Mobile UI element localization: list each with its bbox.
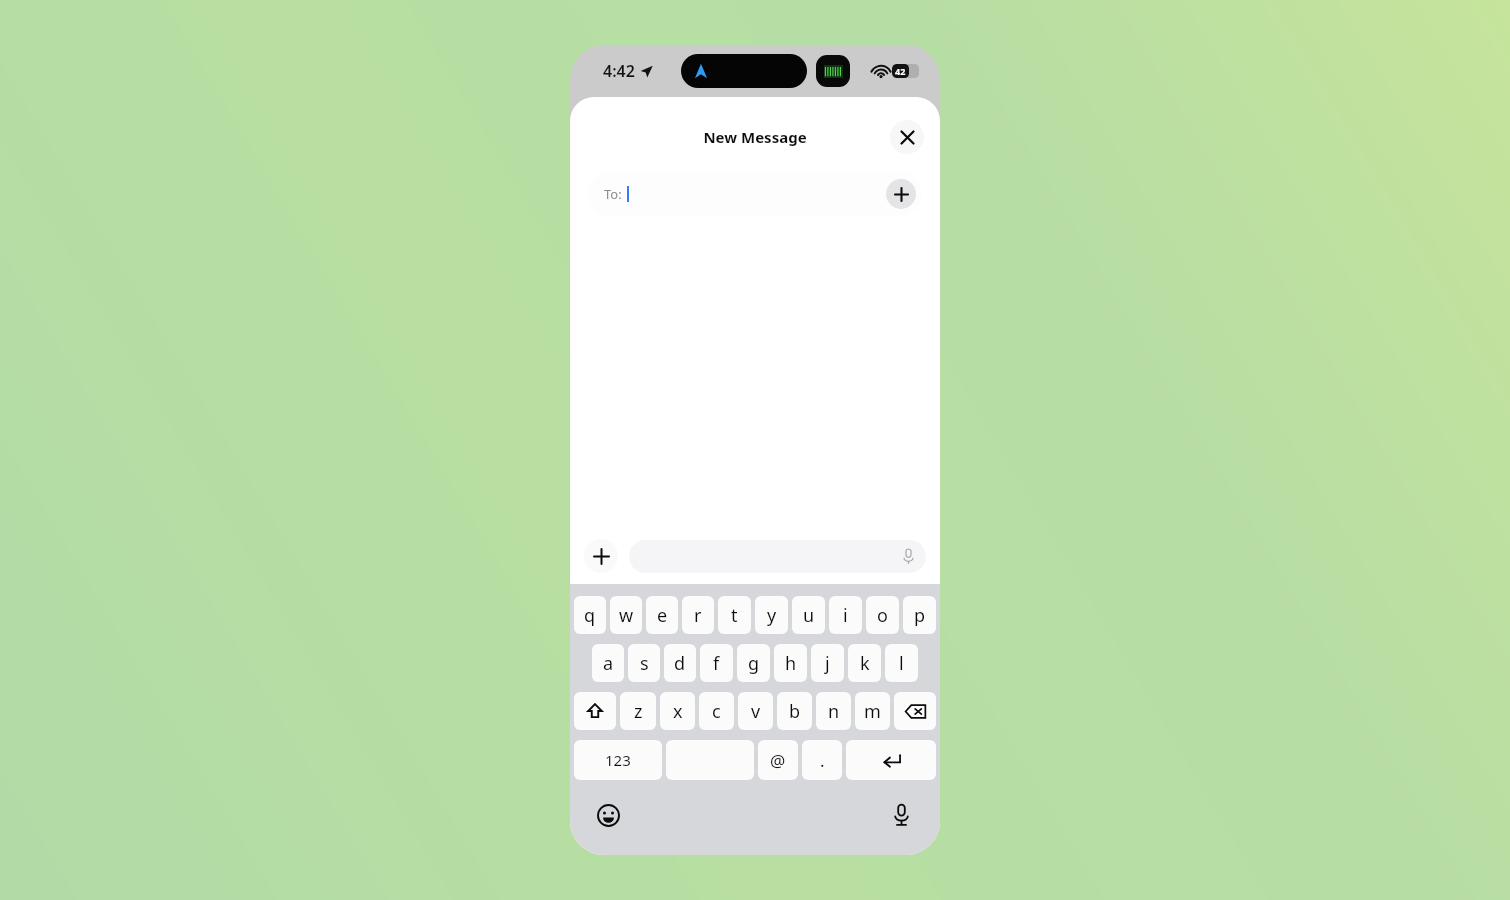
staticText: c: [712, 699, 721, 724]
button[interactable]: [629, 540, 926, 573]
button[interactable]: Return: [846, 740, 936, 780]
button[interactable]: k: [848, 644, 881, 682]
button[interactable]: e: [646, 596, 678, 634]
button[interactable]: u: [792, 596, 825, 634]
button[interactable]: n: [816, 692, 851, 730]
button[interactable]: q: [574, 596, 606, 634]
staticText: l: [899, 651, 904, 676]
button[interactable]: p: [903, 596, 936, 634]
button[interactable]: Add contact: [886, 179, 916, 209]
button[interactable]: Dictate: [888, 802, 914, 828]
button[interactable]: a: [592, 644, 624, 682]
button[interactable]: o: [866, 596, 899, 634]
button[interactable]: b: [777, 692, 812, 730]
staticText: .: [820, 749, 825, 772]
button[interactable]: l: [885, 644, 918, 682]
button[interactable]: y: [755, 596, 788, 634]
button[interactable]: Shift: [574, 692, 616, 730]
button[interactable]: s: [628, 644, 660, 682]
button[interactable]: z: [620, 692, 656, 730]
staticText: f: [713, 651, 720, 676]
staticText: e: [657, 603, 668, 628]
button[interactable]: j: [811, 644, 844, 682]
staticText: 42: [895, 65, 906, 77]
staticText: x: [673, 699, 683, 724]
staticText: g: [748, 651, 760, 676]
button[interactable]: d: [664, 644, 696, 682]
staticText: t: [731, 603, 738, 628]
button[interactable]: i: [829, 596, 862, 634]
staticText: 123: [605, 750, 631, 770]
staticText: @: [770, 749, 786, 772]
staticText: b: [789, 699, 801, 724]
staticText: 4:42: [603, 60, 635, 82]
button[interactable]: h: [774, 644, 807, 682]
staticText: w: [619, 603, 634, 628]
staticText: y: [767, 603, 777, 628]
staticText: q: [584, 603, 596, 628]
staticText: z: [634, 699, 643, 724]
staticText: n: [828, 699, 840, 724]
staticText: k: [860, 651, 870, 676]
button[interactable]: To:: [588, 172, 922, 216]
staticText: p: [914, 603, 926, 628]
button[interactable]: g: [737, 644, 770, 682]
button[interactable]: Emoji: [595, 802, 621, 828]
button[interactable]: Close: [890, 120, 924, 154]
staticText: New Message: [703, 127, 807, 147]
button[interactable]: t: [718, 596, 751, 634]
staticText: j: [825, 651, 830, 676]
button[interactable]: x: [660, 692, 695, 730]
button[interactable]: @: [758, 740, 798, 780]
staticText: m: [864, 699, 881, 724]
staticText: i: [843, 603, 848, 628]
button[interactable]: Space: [666, 740, 754, 780]
button[interactable]: c: [699, 692, 734, 730]
button[interactable]: .: [802, 740, 842, 780]
button[interactable]: r: [682, 596, 714, 634]
staticText: r: [694, 603, 702, 628]
button[interactable]: f: [700, 644, 733, 682]
button[interactable]: 123: [574, 740, 662, 780]
staticText: d: [674, 651, 686, 676]
button[interactable]: Attach: [584, 539, 618, 573]
staticText: u: [803, 603, 815, 628]
button[interactable]: m: [855, 692, 890, 730]
staticText: h: [785, 651, 797, 676]
staticText: o: [877, 603, 888, 628]
button[interactable]: v: [738, 692, 773, 730]
button[interactable]: Backspace: [894, 692, 936, 730]
staticText: v: [751, 699, 761, 724]
button[interactable]: w: [610, 596, 642, 634]
staticText: s: [640, 651, 649, 676]
staticText: To:: [604, 185, 622, 203]
staticText: a: [603, 651, 614, 676]
